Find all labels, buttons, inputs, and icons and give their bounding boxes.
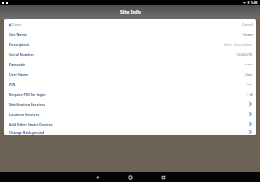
staticText: Passcode (9, 62, 26, 67)
staticText: User (245, 72, 253, 77)
button[interactable]: Description (4, 39, 256, 49)
button[interactable]: Back (95, 175, 100, 180)
button[interactable]: Home (128, 175, 133, 180)
button[interactable]: Require PIN for login (4, 89, 256, 99)
button[interactable]: Recents (161, 175, 166, 180)
staticText: Add Other Smart Devices (9, 122, 53, 127)
button[interactable]: Passcode (4, 59, 256, 69)
staticText: Done (12, 22, 22, 27)
staticText: PIN (9, 82, 16, 87)
staticText: •••• (247, 82, 253, 87)
button[interactable]: Done (8, 22, 22, 27)
staticText: Site Info (120, 9, 141, 16)
button[interactable]: Notification Services (4, 99, 256, 109)
button[interactable]: Cancel (242, 22, 253, 27)
staticText: Cancel (242, 22, 253, 27)
staticText: Description (9, 42, 30, 47)
button[interactable]: Location Services (4, 109, 256, 119)
button[interactable]: PIN (4, 79, 256, 89)
button[interactable]: Site Name (4, 29, 256, 39)
staticText: Location Services (9, 112, 40, 117)
staticText: Serial Number (9, 52, 35, 57)
staticText: Site Name (9, 32, 27, 37)
staticText: Notification Services (9, 102, 46, 107)
staticText: 5:48 (251, 1, 258, 5)
staticText: Home (243, 32, 253, 37)
button[interactable]: User Name (4, 69, 256, 79)
staticText: Require PIN for login (9, 92, 46, 97)
staticText: •••••• (245, 62, 253, 67)
button[interactable]: Change Background (4, 129, 256, 135)
staticText: Change Background (9, 130, 45, 135)
staticText: User Name (9, 72, 29, 77)
staticText: Enter description (224, 42, 253, 47)
button[interactable]: Serial Number (4, 49, 256, 59)
staticText: 12345678 (236, 52, 253, 57)
button[interactable]: Add Other Smart Devices (4, 119, 256, 129)
